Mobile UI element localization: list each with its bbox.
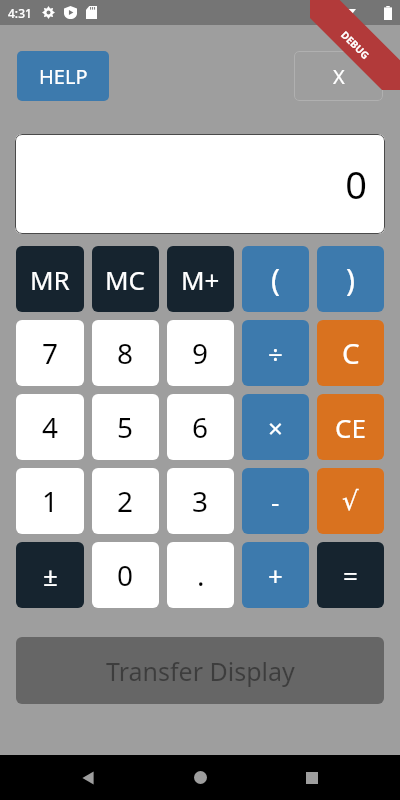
button[interactable]: Back <box>64 755 112 800</box>
button[interactable]: 0 <box>15 134 385 234</box>
button[interactable]: 5 <box>92 394 159 460</box>
staticText: DEBUG <box>338 28 373 62</box>
staticText: 1 <box>42 482 59 520</box>
staticText: . <box>197 556 205 594</box>
button[interactable]: 7 <box>16 320 84 386</box>
staticText: 4 <box>42 408 59 446</box>
staticText: + <box>268 558 283 593</box>
button[interactable]: + <box>242 542 309 608</box>
staticText: M+ <box>181 262 220 297</box>
staticText: ) <box>346 259 355 300</box>
button[interactable]: √ <box>317 468 384 534</box>
staticText: 4:31 <box>8 5 32 21</box>
staticText: Transfer Display <box>106 654 295 688</box>
staticText: - <box>271 484 280 519</box>
button[interactable]: 6 <box>167 394 234 460</box>
button[interactable]: × <box>242 394 309 460</box>
staticText: 8 <box>117 334 134 372</box>
button[interactable]: 8 <box>92 320 159 386</box>
button[interactable]: MC <box>92 246 159 312</box>
staticText: √ <box>342 486 359 516</box>
button[interactable]: HELP <box>17 51 109 101</box>
button[interactable]: . <box>167 542 234 608</box>
staticText: MC <box>105 262 146 297</box>
button[interactable]: M+ <box>167 246 234 312</box>
button[interactable]: MR <box>16 246 84 312</box>
button[interactable]: ( <box>242 246 309 312</box>
staticText: X <box>333 63 345 90</box>
button[interactable]: 4 <box>16 394 84 460</box>
staticText: ( <box>271 259 280 300</box>
staticText: 5 <box>117 408 134 446</box>
button[interactable]: ÷ <box>242 320 309 386</box>
button[interactable]: 2 <box>92 468 159 534</box>
staticText: C <box>342 334 360 372</box>
staticText: 2 <box>117 482 134 520</box>
staticText: ÷ <box>268 336 283 371</box>
button[interactable]: ) <box>317 246 384 312</box>
button[interactable]: 0 <box>92 542 159 608</box>
staticText: ± <box>43 558 58 593</box>
staticText: 7 <box>42 334 59 372</box>
button[interactable]: C <box>317 320 384 386</box>
staticText: 9 <box>192 334 209 372</box>
button[interactable]: CE <box>317 394 384 460</box>
button[interactable]: = <box>317 542 384 608</box>
staticText: 0 <box>345 158 367 210</box>
staticText: MR <box>30 262 70 297</box>
staticText: HELP <box>39 63 88 90</box>
staticText: CE <box>335 410 366 445</box>
staticText: 3 <box>192 482 209 520</box>
button[interactable]: - <box>242 468 309 534</box>
button[interactable]: 1 <box>16 468 84 534</box>
button[interactable]: 9 <box>167 320 234 386</box>
button[interactable]: 3 <box>167 468 234 534</box>
staticText: × <box>268 410 283 445</box>
button[interactable]: ± <box>16 542 84 608</box>
button[interactable]: Transfer Display <box>16 637 384 704</box>
button[interactable]: Recent apps <box>288 755 336 800</box>
staticText: = <box>343 558 358 593</box>
staticText: 0 <box>117 556 134 594</box>
button[interactable]: Home <box>176 755 224 800</box>
staticText: 6 <box>192 408 209 446</box>
button[interactable]: X <box>294 51 383 101</box>
